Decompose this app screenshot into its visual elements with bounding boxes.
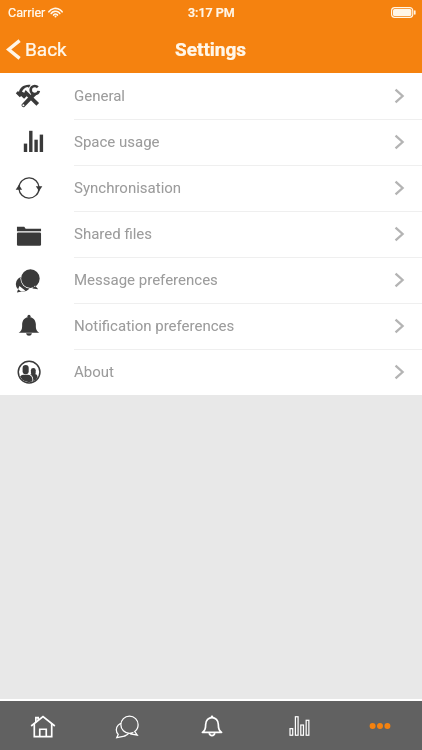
staticText: Message preferences: [74, 271, 395, 289]
button[interactable]: Shared files: [0, 211, 422, 257]
button[interactable]: About: [0, 349, 422, 395]
button[interactable]: Statistics: [254, 701, 338, 750]
button[interactable]: Synchronisation: [0, 165, 422, 211]
button[interactable]: General: [0, 73, 422, 119]
button[interactable]: Back: [0, 38, 77, 60]
staticText: Space usage: [74, 133, 395, 151]
button[interactable]: More options: [338, 701, 422, 750]
staticText: Back: [25, 38, 67, 60]
staticText: Settings: [175, 38, 247, 60]
staticText: Notification preferences: [74, 317, 395, 335]
staticText: Shared files: [74, 225, 395, 243]
button[interactable]: Notifications: [170, 701, 254, 750]
button[interactable]: Messages: [85, 701, 170, 750]
button[interactable]: Notification preferences: [0, 303, 422, 349]
staticText: General: [74, 87, 395, 105]
button[interactable]: Space usage: [0, 119, 422, 165]
staticText: About: [74, 363, 395, 381]
button[interactable]: Home: [0, 701, 85, 750]
button[interactable]: Message preferences: [0, 257, 422, 303]
staticText: 3:17 PM: [188, 5, 235, 20]
staticText: Synchronisation: [74, 179, 395, 197]
staticText: Carrier: [8, 5, 46, 20]
